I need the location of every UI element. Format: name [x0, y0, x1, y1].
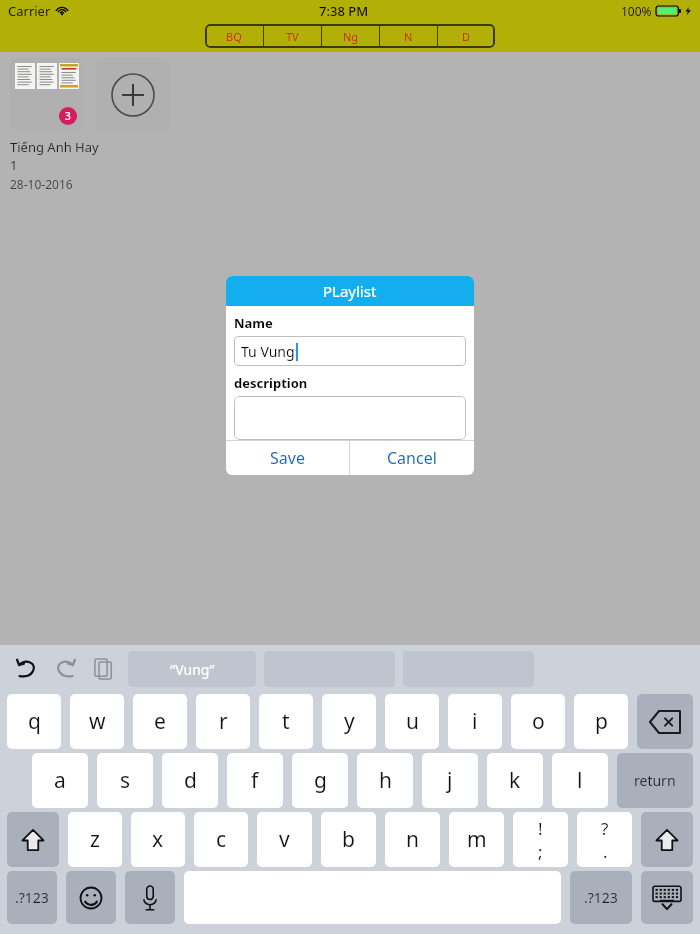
button[interactable]: g	[292, 753, 348, 808]
staticText: .	[603, 840, 608, 863]
staticText: N	[404, 29, 413, 44]
button[interactable]: b	[321, 812, 376, 867]
staticText: 28-10-2016	[10, 176, 73, 192]
button[interactable]: BQ	[205, 24, 263, 48]
staticText: g	[314, 766, 327, 795]
staticText: D	[462, 29, 471, 44]
button[interactable]: o	[511, 694, 565, 749]
staticText: h	[379, 766, 392, 795]
staticText: k	[509, 766, 521, 795]
button[interactable]: ?	[577, 812, 632, 867]
staticText: r	[219, 707, 228, 736]
staticText: m	[467, 825, 487, 854]
staticText: s	[120, 766, 131, 795]
staticText: Name	[234, 314, 273, 332]
staticText: !	[538, 817, 543, 840]
staticText: Ng	[343, 29, 359, 44]
button[interactable]: t	[259, 694, 313, 749]
button[interactable]: Ng	[322, 24, 379, 48]
staticText: Carrier	[8, 2, 51, 20]
staticText: u	[406, 707, 419, 736]
button[interactable]	[234, 396, 466, 440]
button[interactable]: j	[422, 753, 478, 808]
staticText: 100%	[621, 3, 652, 19]
button[interactable]: l	[552, 753, 608, 808]
button[interactable]: n	[385, 812, 440, 867]
button[interactable]: u	[385, 694, 439, 749]
button[interactable]: .?123	[7, 871, 57, 924]
button[interactable]: Undo	[8, 650, 46, 688]
button[interactable]: w	[70, 694, 124, 749]
button[interactable]: Tu Vung	[234, 336, 466, 366]
button[interactable]: f	[227, 753, 283, 808]
button[interactable]: s	[97, 753, 153, 808]
staticText: Cancel	[387, 447, 437, 469]
button[interactable]: c	[194, 812, 248, 867]
button[interactable]: Redo	[46, 650, 84, 688]
button[interactable]: “Vung”	[128, 651, 256, 687]
button[interactable]: !	[513, 812, 568, 867]
staticText: return	[634, 771, 676, 790]
button[interactable]: Save	[226, 441, 349, 475]
button[interactable]: N	[380, 24, 437, 48]
button[interactable]: Add playlist	[96, 58, 170, 132]
staticText: Tu Vung	[241, 342, 295, 361]
button[interactable]: D	[438, 24, 495, 48]
button[interactable]: d	[162, 753, 218, 808]
staticText: ?	[601, 817, 609, 840]
button[interactable]: Cancel	[350, 441, 474, 475]
staticText: p	[595, 707, 608, 736]
staticText: .?123	[584, 888, 618, 907]
button[interactable]: h	[357, 753, 413, 808]
button[interactable]: a	[32, 753, 88, 808]
button[interactable]: v	[257, 812, 312, 867]
staticText: b	[342, 825, 355, 854]
staticText: v	[279, 825, 290, 854]
staticText: .?123	[15, 888, 49, 907]
button[interactable]: 3	[10, 58, 84, 132]
button[interactable]: i	[448, 694, 502, 749]
button[interactable]: Dictation	[125, 871, 175, 924]
button[interactable]: Backspace	[637, 694, 693, 749]
staticText: description	[234, 374, 308, 392]
staticText: 1	[10, 156, 18, 174]
staticText: ;	[538, 840, 543, 863]
staticText: 3	[65, 109, 71, 123]
button[interactable]: r	[196, 694, 250, 749]
button[interactable]: p	[574, 694, 628, 749]
button[interactable]: e	[133, 694, 187, 749]
button[interactable]: q	[7, 694, 61, 749]
staticText: a	[54, 766, 66, 795]
button[interactable]: z	[68, 812, 122, 867]
button[interactable]: k	[487, 753, 543, 808]
staticText: “Vung”	[170, 660, 215, 679]
button[interactable]: y	[322, 694, 376, 749]
button[interactable]: Shift	[641, 812, 693, 867]
staticText: q	[28, 707, 41, 736]
button[interactable]: TV	[264, 24, 321, 48]
staticText: e	[154, 707, 166, 736]
staticText: i	[472, 707, 478, 736]
button[interactable]: Hide keyboard	[641, 871, 693, 924]
button[interactable]: Shift	[7, 812, 59, 867]
button[interactable]: Paste	[84, 650, 122, 688]
staticText: z	[90, 825, 100, 854]
staticText: t	[282, 707, 290, 736]
staticText: j	[447, 766, 453, 795]
staticText: BQ	[226, 29, 242, 44]
staticText: Save	[270, 447, 305, 469]
staticText: y	[344, 707, 355, 736]
button[interactable]: m	[449, 812, 504, 867]
staticText: PLaylist	[323, 281, 377, 301]
staticText: d	[184, 766, 197, 795]
button[interactable]: Emoji	[66, 871, 116, 924]
staticText: x	[152, 825, 164, 854]
staticText: f	[251, 766, 259, 795]
staticText: TV	[286, 29, 299, 44]
button[interactable]: .?123	[570, 871, 632, 924]
button[interactable]: return	[617, 753, 693, 808]
button[interactable]: x	[131, 812, 185, 867]
